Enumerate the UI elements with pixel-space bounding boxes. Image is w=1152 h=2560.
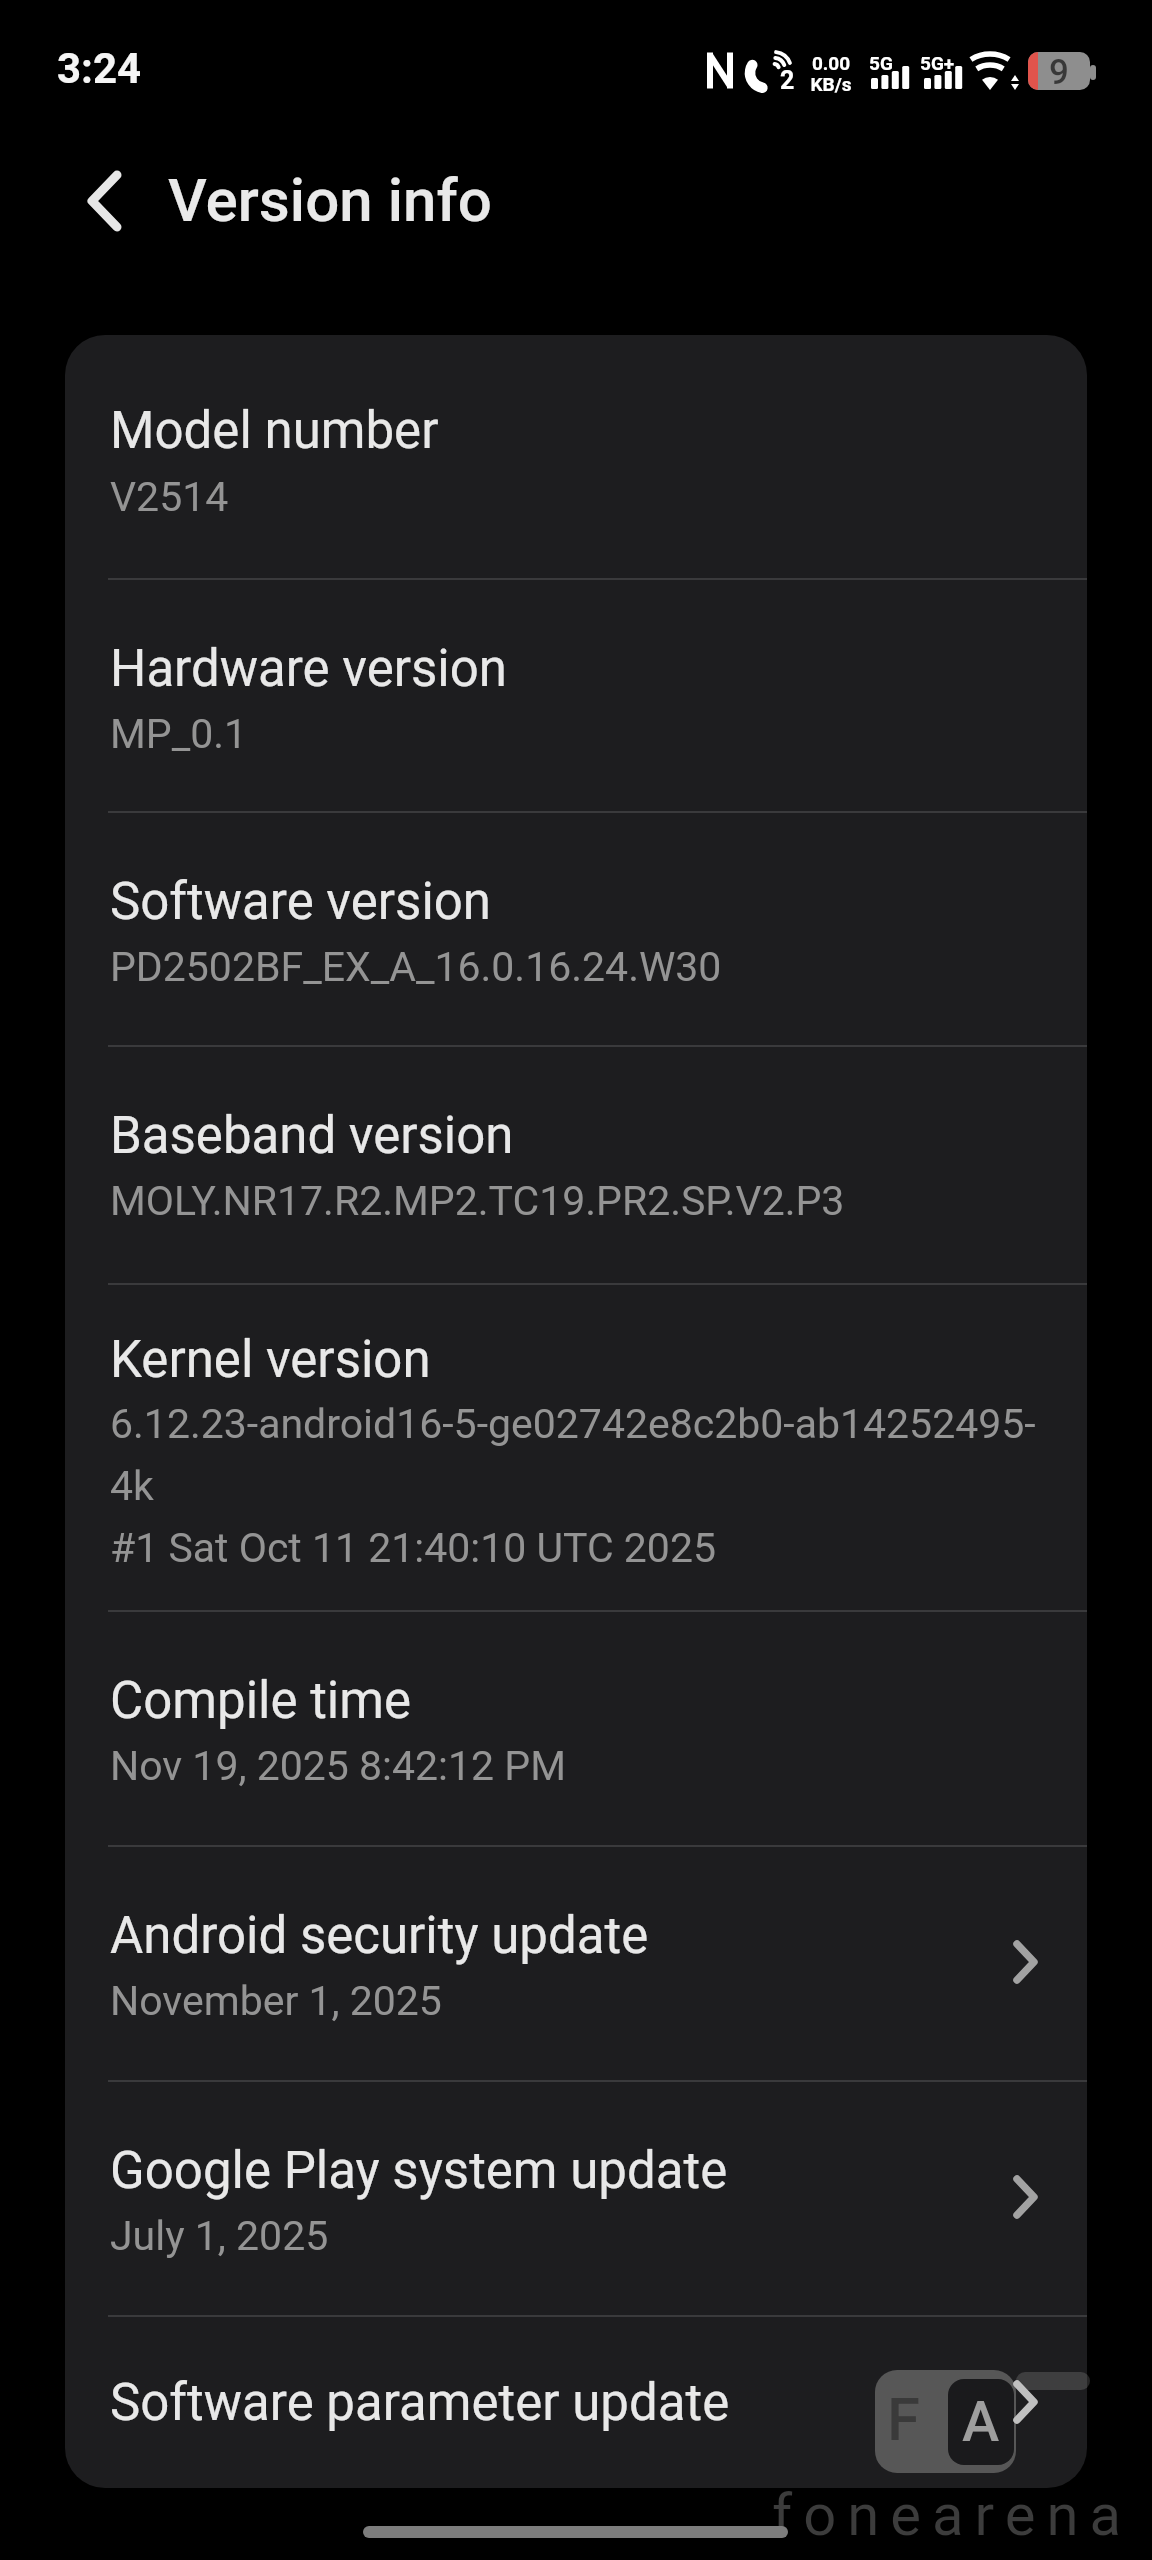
button[interactable]: Baseband version: [65, 1045, 1087, 1283]
staticText: PD2502BF_EX_A_16.0.16.24.W30: [110, 943, 722, 991]
button[interactable]: Android security update: [65, 1845, 1087, 2080]
staticText: Compile time: [110, 1671, 411, 1731]
staticText: 5G: [869, 52, 893, 74]
button[interactable]: Model number: [65, 335, 1087, 578]
staticText: 6.12.23-android16-5-ge02742e8c2b0-ab1425…: [110, 1400, 1036, 1572]
staticText: Nov 19, 2025 8:42:12 PM: [110, 1742, 566, 1790]
staticText: 5G+: [920, 52, 955, 74]
staticText: Kernel version: [110, 1330, 431, 1390]
staticText: fonearena: [772, 2481, 1133, 2549]
staticText: 2: [780, 66, 795, 95]
staticText: Google Play system update: [110, 2141, 728, 2201]
button[interactable]: Hardware version: [65, 578, 1087, 811]
staticText: V2514: [110, 473, 229, 521]
staticText: Software version: [110, 872, 492, 932]
staticText: MP_0.1: [110, 710, 248, 758]
button[interactable]: Software parameter update: [65, 2315, 1087, 2488]
staticText: 9: [1049, 52, 1069, 90]
staticText: Model number: [110, 401, 439, 461]
staticText: Hardware version: [110, 639, 507, 699]
button[interactable]: Software version: [65, 811, 1087, 1045]
staticText: A: [962, 2389, 1000, 2455]
staticText: Android security update: [110, 1906, 649, 1966]
staticText: 3:24: [57, 44, 142, 93]
staticText: November 1, 2025: [110, 1977, 442, 2025]
staticText: Software parameter update: [110, 2373, 730, 2433]
staticText: Version info: [168, 165, 492, 235]
staticText: July 1, 2025: [110, 2212, 329, 2260]
staticText: F: [887, 2384, 920, 2454]
staticText: MOLY.NR17.R2.MP2.TC19.PR2.SP.V2.P3: [110, 1177, 845, 1225]
staticText: Baseband version: [110, 1106, 514, 1166]
button[interactable]: Compile time: [65, 1610, 1087, 1845]
button[interactable]: Kernel version: [65, 1283, 1087, 1610]
staticText: 0.00 KB/s: [806, 52, 856, 95]
button[interactable]: Google Play system update: [65, 2080, 1087, 2315]
button[interactable]: [70, 158, 140, 248]
